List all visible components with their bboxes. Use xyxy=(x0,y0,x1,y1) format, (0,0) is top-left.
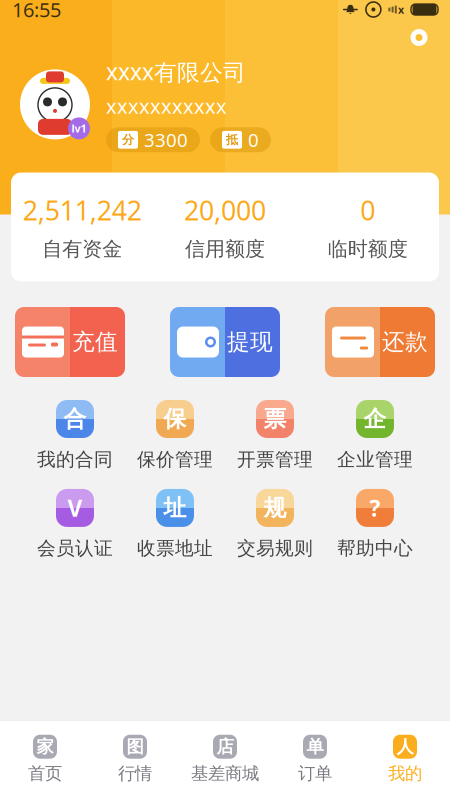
staticText: 票 xyxy=(263,405,286,433)
button[interactable]: 址 xyxy=(125,489,225,560)
button[interactable]: 图 xyxy=(90,727,180,792)
staticText: 信用额度 xyxy=(185,237,265,261)
button[interactable]: 店 xyxy=(180,727,270,792)
staticText: 帮助中心 xyxy=(337,537,413,560)
staticText: 16:55 xyxy=(12,0,61,23)
staticText: 交易规则 xyxy=(237,537,313,560)
button[interactable]: 分 xyxy=(106,127,200,152)
staticText: 3300 xyxy=(144,127,188,152)
button[interactable]: 充值 xyxy=(15,307,125,377)
staticText: 自有资金 xyxy=(42,237,122,261)
staticText: 会员认证 xyxy=(37,537,113,560)
staticText: 收票地址 xyxy=(137,537,213,560)
staticText: lv1 xyxy=(71,121,86,135)
staticText: 图 xyxy=(126,736,143,757)
staticText: 首页 xyxy=(28,763,62,784)
staticText: 家 xyxy=(36,736,53,757)
staticText: 临时额度 xyxy=(328,237,408,261)
button[interactable]: 企 xyxy=(325,400,425,471)
staticText: 20,000 xyxy=(184,192,266,228)
staticText: V xyxy=(67,493,82,523)
button[interactable]: 抵 xyxy=(210,127,271,152)
button[interactable]: 单 xyxy=(270,727,360,792)
button[interactable]: 提现 xyxy=(170,307,280,377)
staticText: 2,511,242 xyxy=(23,192,142,228)
button[interactable]: 人 xyxy=(360,727,450,792)
button[interactable]: 合 xyxy=(25,400,125,471)
staticText: 我的 xyxy=(388,763,422,784)
staticText: xxxxxxxxxxx xyxy=(106,93,227,119)
button[interactable]: 规 xyxy=(225,489,325,560)
staticText: 单 xyxy=(306,736,323,757)
staticText: 店 xyxy=(216,736,233,757)
staticText: xxxx有限公司 xyxy=(106,56,246,87)
staticText: 订单 xyxy=(298,763,332,784)
staticText: 合 xyxy=(63,405,86,433)
button[interactable]: 票 xyxy=(225,400,325,471)
staticText: 行情 xyxy=(118,763,152,784)
staticText: 址 xyxy=(163,494,186,522)
staticText: 我的合同 xyxy=(37,448,113,471)
button[interactable]: 保 xyxy=(125,400,225,471)
staticText: 0 xyxy=(360,192,375,228)
staticText: 开票管理 xyxy=(237,448,313,471)
staticText: 分 xyxy=(122,132,134,147)
button[interactable]: ? xyxy=(325,489,425,560)
staticText: 0 xyxy=(248,127,259,152)
staticText: 人 xyxy=(396,736,413,757)
staticText: 企业管理 xyxy=(337,448,413,471)
staticText: 抵 xyxy=(226,132,238,147)
staticText: 提现 xyxy=(227,328,273,356)
button[interactable]: 还款 xyxy=(325,307,435,377)
staticText: 充值 xyxy=(72,328,118,356)
button[interactable]: Settings xyxy=(402,22,436,52)
button[interactable]: V xyxy=(25,489,125,560)
button[interactable]: 家 xyxy=(0,727,90,792)
staticText: 保价管理 xyxy=(137,448,213,471)
staticText: 基差商城 xyxy=(191,763,259,784)
staticText: 还款 xyxy=(382,328,428,356)
staticText: ? xyxy=(369,493,380,523)
staticText: 保 xyxy=(163,405,186,433)
staticText: x xyxy=(398,2,404,17)
staticText: 规 xyxy=(263,494,286,522)
staticText: 企 xyxy=(363,405,386,433)
